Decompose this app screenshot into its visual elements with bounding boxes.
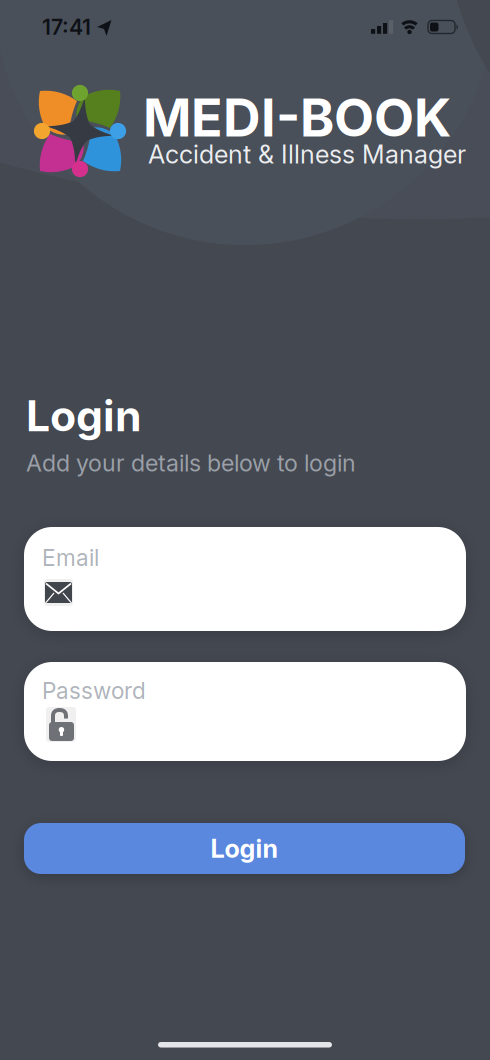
staticText: Password <box>42 677 146 704</box>
staticText: Login <box>210 833 278 864</box>
button[interactable]: Login <box>24 823 465 874</box>
staticText: Add your details below to login <box>26 449 356 477</box>
staticText: Accident & Illness Manager <box>148 139 466 170</box>
staticText: Email <box>42 544 99 571</box>
staticText: Login <box>26 390 142 442</box>
button[interactable]: Password <box>24 662 466 761</box>
button[interactable]: Email <box>24 527 466 631</box>
staticText: MEDI-BOOK <box>143 86 451 149</box>
staticText: 17:41 <box>42 14 91 40</box>
